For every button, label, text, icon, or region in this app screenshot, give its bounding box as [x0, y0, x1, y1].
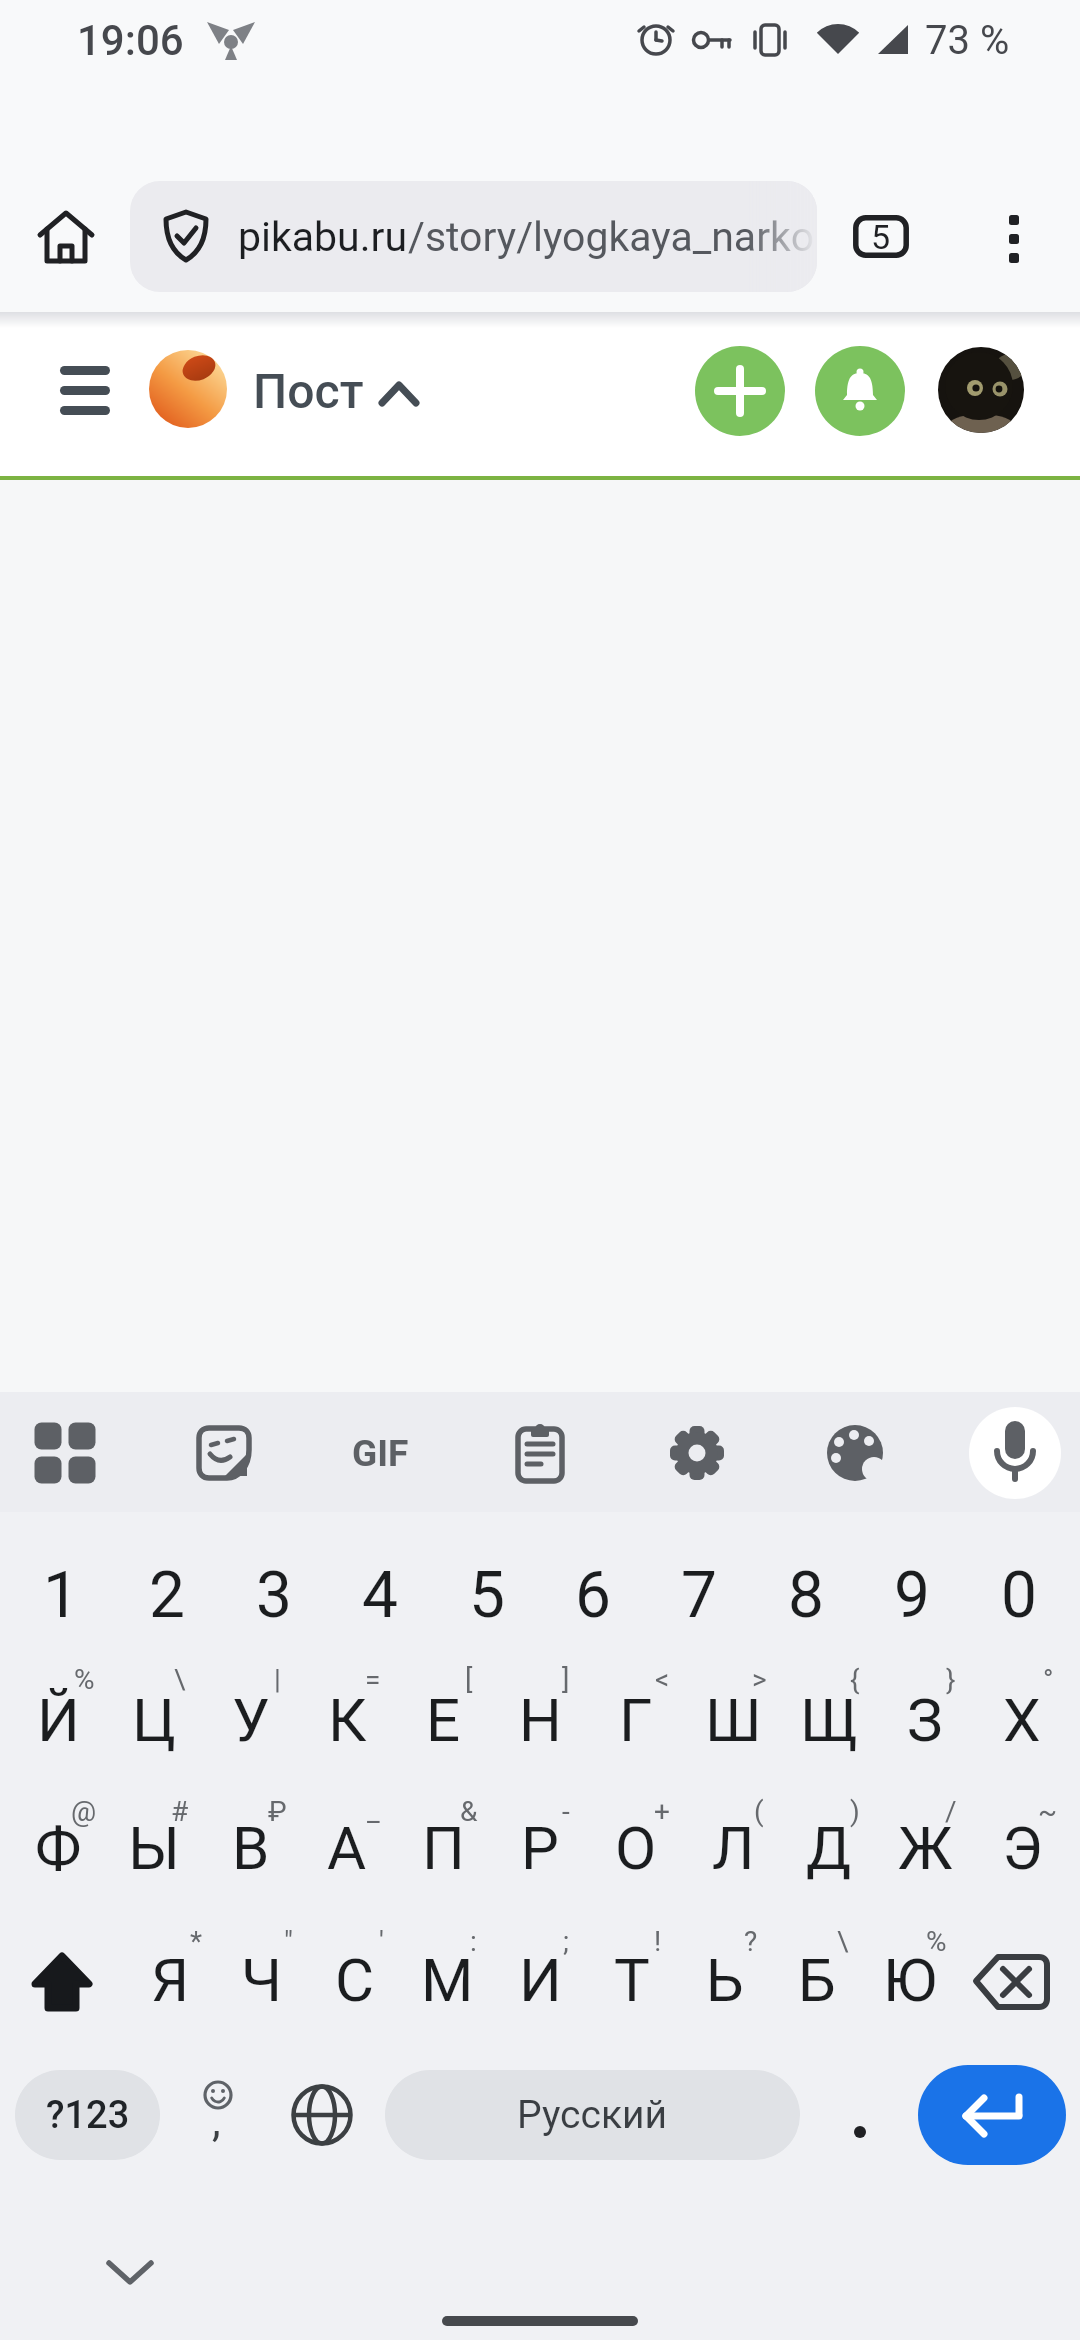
staticText: Л: [712, 1813, 755, 1883]
staticText: Й: [37, 1685, 80, 1755]
staticText: 3: [256, 1558, 292, 1633]
button[interactable]: 9: [859, 1533, 965, 1657]
button[interactable]: Ч: [216, 1913, 308, 2047]
button[interactable]: ,: [170, 2047, 266, 2180]
staticText: ,: [212, 2095, 221, 2147]
button[interactable]: [31, 1419, 99, 1487]
button[interactable]: 4: [327, 1533, 433, 1657]
button[interactable]: Л: [685, 1783, 781, 1913]
button[interactable]: 5: [853, 215, 909, 258]
button[interactable]: [695, 346, 785, 436]
button[interactable]: П: [395, 1783, 491, 1913]
button[interactable]: Щ: [781, 1657, 877, 1783]
button[interactable]: 8: [753, 1533, 859, 1657]
staticText: Ж: [898, 1813, 953, 1883]
button[interactable]: С: [309, 1913, 401, 2047]
button[interactable]: Я: [124, 1913, 216, 2047]
staticText: ): [850, 1795, 860, 1828]
button[interactable]: [938, 347, 1024, 433]
staticText: \: [837, 1925, 849, 1958]
button[interactable]: Е: [395, 1657, 491, 1783]
staticText: 6: [575, 1558, 611, 1633]
button[interactable]: 1: [8, 1533, 114, 1657]
staticText: GIF: [352, 1432, 409, 1475]
button[interactable]: ?123: [15, 2070, 160, 2160]
staticText: @: [71, 1795, 97, 1828]
button[interactable]: Ж: [877, 1783, 973, 1913]
button[interactable]: [36, 207, 96, 267]
button[interactable]: В: [203, 1783, 299, 1913]
staticText: /: [945, 1795, 957, 1828]
button[interactable]: Г: [588, 1657, 684, 1783]
staticText: 5: [469, 1558, 505, 1633]
staticText: Х: [1003, 1685, 1041, 1755]
staticText: Ю: [883, 1945, 937, 2015]
staticText: [: [465, 1663, 473, 1696]
button[interactable]: [984, 209, 1044, 269]
staticText: 73 %: [925, 17, 1010, 64]
button[interactable]: У: [203, 1657, 299, 1783]
button[interactable]: [969, 1407, 1061, 1499]
button[interactable]: 5: [434, 1533, 540, 1657]
staticText: Ф: [35, 1813, 82, 1883]
button[interactable]: 2: [114, 1533, 220, 1657]
button[interactable]: 7: [646, 1533, 752, 1657]
button[interactable]: [100, 2242, 160, 2302]
button[interactable]: [663, 1419, 731, 1487]
button[interactable]: Ш: [685, 1657, 781, 1783]
button[interactable]: 6: [540, 1533, 646, 1657]
staticText: ': [379, 1925, 384, 1958]
button[interactable]: pikabu.ru: [130, 181, 817, 292]
button[interactable]: Ы: [106, 1783, 202, 1913]
staticText: З: [907, 1685, 943, 1755]
staticText: +: [654, 1795, 670, 1828]
button[interactable]: [821, 1419, 889, 1487]
button[interactable]: 0: [966, 1533, 1072, 1657]
staticText: 19:06: [77, 16, 184, 65]
button[interactable]: [956, 1913, 1080, 2047]
button[interactable]: Д: [781, 1783, 877, 1913]
button[interactable]: Пост: [248, 352, 368, 430]
button[interactable]: И: [494, 1913, 586, 2047]
staticText: \: [174, 1663, 186, 1696]
button[interactable]: Ф: [10, 1783, 106, 1913]
staticText: |: [274, 1663, 281, 1696]
button[interactable]: Русский: [385, 2070, 800, 2160]
button[interactable]: Х: [974, 1657, 1070, 1783]
button[interactable]: [272, 2047, 372, 2180]
button[interactable]: М: [401, 1913, 493, 2047]
staticText: Э: [1002, 1813, 1043, 1883]
staticText: С: [335, 1945, 375, 2015]
button[interactable]: К: [299, 1657, 395, 1783]
staticText: Ь: [706, 1945, 744, 2015]
button[interactable]: А: [299, 1783, 395, 1913]
button[interactable]: [918, 2065, 1066, 2165]
button[interactable]: [820, 2047, 900, 2180]
button[interactable]: [190, 1419, 258, 1487]
button[interactable]: Ц: [106, 1657, 202, 1783]
button[interactable]: [506, 1419, 574, 1487]
staticText: М: [421, 1945, 474, 2015]
button[interactable]: 3: [221, 1533, 327, 1657]
button[interactable]: [0, 1913, 124, 2047]
button[interactable]: Т: [586, 1913, 678, 2047]
button[interactable]: О: [588, 1783, 684, 1913]
staticText: 2: [149, 1558, 185, 1633]
button[interactable]: З: [877, 1657, 973, 1783]
button[interactable]: Ь: [679, 1913, 771, 2047]
staticText: 9: [894, 1558, 930, 1633]
staticText: _: [367, 1795, 380, 1828]
button[interactable]: Й: [10, 1657, 106, 1783]
staticText: ~: [1038, 1795, 1058, 1828]
button[interactable]: GIF: [338, 1423, 422, 1483]
button[interactable]: [815, 346, 905, 436]
button[interactable]: [50, 352, 120, 430]
staticText: }: [946, 1663, 956, 1696]
staticText: К: [328, 1685, 367, 1755]
button[interactable]: Б: [771, 1913, 863, 2047]
staticText: Ц: [132, 1685, 176, 1755]
button[interactable]: Ю: [864, 1913, 956, 2047]
button[interactable]: Н: [492, 1657, 588, 1783]
button[interactable]: Р: [492, 1783, 588, 1913]
button[interactable]: Э: [974, 1783, 1070, 1913]
